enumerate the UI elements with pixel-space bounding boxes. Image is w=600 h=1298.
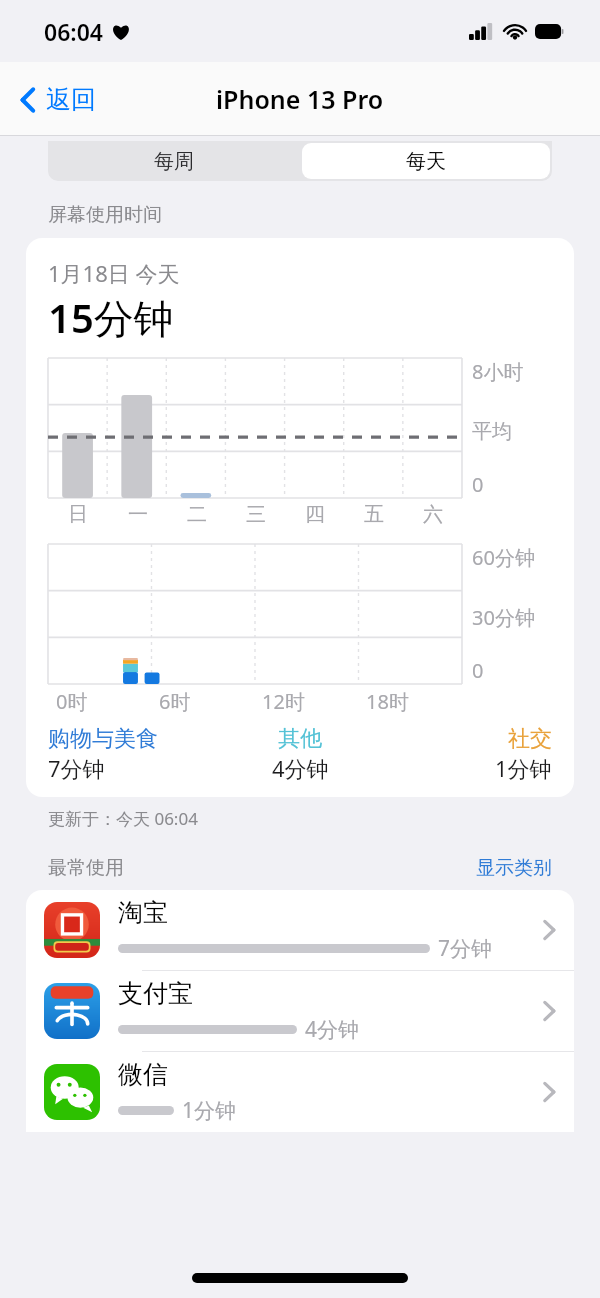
staticText: 12时 <box>262 688 305 715</box>
staticText: 1分钟 <box>182 1096 237 1125</box>
staticText: 8小时 <box>472 358 524 385</box>
staticText: 4分钟 <box>305 1015 360 1044</box>
staticText: 7分钟 <box>48 753 105 783</box>
staticText: 购物与美食 <box>48 725 158 753</box>
other: 查看详情 <box>542 999 556 1023</box>
staticText: 二 <box>187 502 207 527</box>
staticText: 0 <box>472 657 484 684</box>
staticText: 更新于：今天 06:04 <box>48 807 198 830</box>
staticText: 18时 <box>366 688 409 715</box>
staticText: 六 <box>423 502 443 527</box>
button[interactable]: 每周 <box>48 141 300 181</box>
other: 查看详情 <box>542 1080 556 1104</box>
other: 查看详情 <box>542 918 556 942</box>
button[interactable]: 支付宝 <box>26 971 574 1052</box>
staticText: 1月18日 今天 <box>48 258 180 288</box>
staticText: 0时 <box>56 688 88 715</box>
button[interactable]: 微信 <box>26 1052 574 1132</box>
staticText: 15分钟 <box>48 290 174 345</box>
staticText: 平均 <box>472 419 512 444</box>
staticText: 显示类别 <box>476 856 552 880</box>
staticText: 返回 <box>46 84 96 115</box>
button[interactable]: 显示类别 <box>476 856 552 880</box>
staticText: 微信 <box>118 1059 168 1090</box>
staticText: 60分钟 <box>472 544 535 571</box>
staticText: 06:04 <box>44 16 103 47</box>
button[interactable]: 1月18日 今天 <box>26 238 574 797</box>
staticText: 四 <box>305 502 325 527</box>
staticText: 6时 <box>159 688 191 715</box>
button[interactable]: 淘宝 <box>26 890 574 971</box>
staticText: 社交 <box>508 725 552 753</box>
staticText: 日 <box>68 502 88 527</box>
staticText: 五 <box>364 502 384 527</box>
staticText: 30分钟 <box>472 604 535 631</box>
button[interactable]: 返回 <box>12 78 104 121</box>
staticText: 7分钟 <box>438 934 493 963</box>
staticText: 淘宝 <box>118 897 168 928</box>
staticText: 1分钟 <box>495 753 552 783</box>
staticText: 0 <box>472 471 484 498</box>
staticText: 最常使用 <box>48 856 124 880</box>
staticText: 每周 <box>154 149 194 174</box>
staticText: 每天 <box>406 149 446 174</box>
staticText: 屏幕使用时间 <box>48 203 162 227</box>
staticText: 4分钟 <box>272 753 329 783</box>
staticText: 支付宝 <box>118 978 193 1009</box>
staticText: 其他 <box>278 725 322 753</box>
button[interactable]: 每天 <box>302 143 550 179</box>
staticText: 三 <box>246 502 266 527</box>
staticText: 一 <box>128 502 148 527</box>
staticText: iPhone 13 Pro <box>216 82 384 116</box>
